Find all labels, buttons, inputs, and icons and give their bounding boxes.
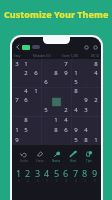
button[interactable]: 8 xyxy=(82,167,88,183)
staticText: 7 xyxy=(15,96,19,104)
button[interactable]: 5 xyxy=(41,105,51,115)
button[interactable]: Notes xyxy=(52,150,61,163)
button[interactable] xyxy=(51,86,61,95)
button[interactable]: 8 xyxy=(21,115,31,125)
button[interactable]: Statistics xyxy=(83,44,90,51)
button[interactable]: 8 xyxy=(51,68,61,77)
button[interactable]: 5 xyxy=(54,167,60,183)
button[interactable]: 4 xyxy=(61,115,71,125)
button[interactable]: Tips xyxy=(85,150,93,163)
button[interactable]: 4 xyxy=(44,167,50,183)
button[interactable]: 9 xyxy=(61,68,71,77)
button[interactable]: Hint xyxy=(69,150,77,163)
button[interactable]: 7 xyxy=(61,59,71,68)
button[interactable]: 8 xyxy=(71,86,81,95)
button[interactable]: 3 xyxy=(12,59,21,68)
button[interactable]: 6 xyxy=(63,167,69,183)
button[interactable]: 2 xyxy=(91,95,101,105)
button[interactable]: 9 xyxy=(92,167,98,183)
button[interactable]: 4 xyxy=(81,125,91,135)
button[interactable]: Language xyxy=(22,45,30,50)
button[interactable]: 6 xyxy=(61,125,71,135)
button[interactable]: 5 xyxy=(71,77,81,86)
button[interactable]: Erase xyxy=(36,150,44,163)
button[interactable]: 7 xyxy=(12,95,21,105)
button[interactable]: 3 xyxy=(35,167,41,183)
button[interactable]: Back xyxy=(14,43,22,51)
button[interactable]: 1 xyxy=(91,135,101,145)
button[interactable]: 6 xyxy=(41,77,51,86)
button[interactable] xyxy=(41,86,51,95)
button[interactable]: 1 xyxy=(16,167,22,183)
button[interactable]: 4 xyxy=(71,105,81,115)
button[interactable]: 1 xyxy=(51,115,61,125)
button[interactable] xyxy=(91,86,101,95)
button[interactable] xyxy=(81,86,91,95)
button[interactable]: 5 xyxy=(21,125,31,135)
button[interactable] xyxy=(12,86,21,95)
button[interactable]: 1 xyxy=(31,86,41,95)
button[interactable] xyxy=(51,105,61,115)
button[interactable] xyxy=(51,95,61,105)
button[interactable]: 6 xyxy=(31,68,41,77)
button[interactable]: 9 xyxy=(71,125,81,135)
button[interactable]: 1 xyxy=(12,125,21,135)
button[interactable] xyxy=(61,86,71,95)
button[interactable]: 7 xyxy=(73,167,79,183)
button[interactable]: 8 xyxy=(51,125,61,135)
button[interactable]: 2 xyxy=(61,105,71,115)
button[interactable]: 9 xyxy=(12,135,21,145)
button[interactable]: 1 xyxy=(71,68,81,77)
button[interactable]: 6 xyxy=(21,95,31,105)
button[interactable]: 4 xyxy=(21,86,31,95)
button[interactable]: 9 xyxy=(81,95,91,105)
button[interactable]: 2 xyxy=(21,68,31,77)
button[interactable]: 8 xyxy=(91,59,101,68)
button[interactable] xyxy=(41,115,51,125)
button[interactable]: Undo xyxy=(20,150,28,163)
button[interactable]: 8 xyxy=(81,135,91,145)
button[interactable]: 3 xyxy=(81,105,91,115)
button[interactable]: 4 xyxy=(91,68,101,77)
button[interactable]: 1 xyxy=(21,59,31,68)
button[interactable]: Settings xyxy=(92,44,99,51)
button[interactable]: 2 xyxy=(25,167,31,183)
button[interactable] xyxy=(71,115,81,125)
button[interactable]: 5 xyxy=(71,135,81,145)
